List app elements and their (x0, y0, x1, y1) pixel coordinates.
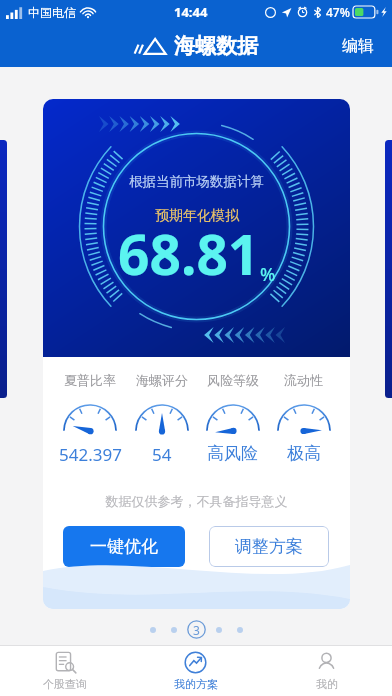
button[interactable]: 编辑 (324, 28, 392, 64)
staticText: 3 (193, 622, 200, 638)
staticText: 一键优化 (90, 536, 158, 557)
button[interactable]: 我的方案 (130, 646, 261, 696)
staticText: 极高 (287, 443, 321, 464)
staticText: 数据仅供参考，不具备指导意义 (43, 493, 350, 509)
button[interactable]: 一键优化 (63, 526, 185, 567)
staticText: 流动性 (284, 372, 323, 388)
staticText: 14:44 (174, 3, 208, 21)
staticText: 542.397 (59, 443, 122, 466)
staticText: 根据当前市场数据计算 (129, 173, 264, 190)
staticText: 个股查询 (43, 677, 87, 691)
staticText: % (260, 262, 276, 287)
staticText: 47% (326, 4, 350, 20)
button[interactable]: 个股查询 (0, 646, 130, 696)
staticText: 预期年化模拟 (155, 207, 239, 225)
staticText: 我的 (316, 677, 338, 691)
staticText: 编辑 (342, 36, 374, 56)
staticText: 我的方案 (174, 677, 218, 691)
staticText: 海螺数据 (174, 33, 258, 59)
staticText: 68.81 (118, 216, 260, 291)
staticText: 夏普比率 (64, 372, 116, 388)
staticText: 中国电信 (28, 5, 76, 20)
staticText: 风险等级 (207, 372, 259, 388)
staticText: 调整方案 (235, 536, 303, 557)
staticText: 高风险 (207, 443, 258, 464)
staticText: 54 (152, 443, 172, 466)
button[interactable]: 调整方案 (209, 526, 329, 567)
button[interactable]: 我的 (261, 646, 392, 696)
staticText: 海螺评分 (136, 372, 188, 388)
